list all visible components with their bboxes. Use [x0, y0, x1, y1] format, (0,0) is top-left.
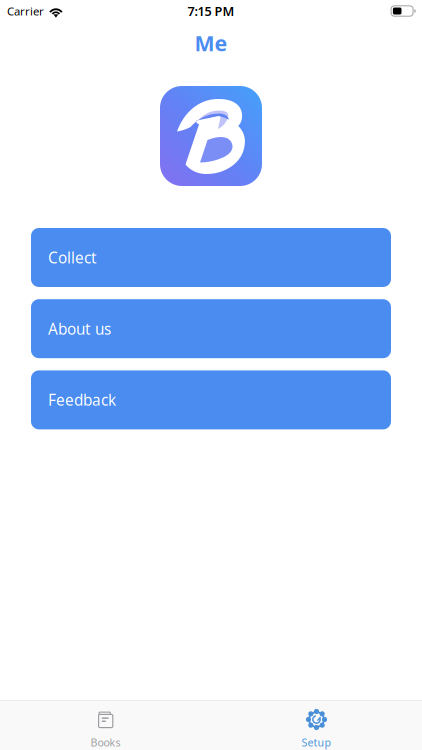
- staticText: About us: [48, 318, 111, 339]
- button[interactable]: Collect: [31, 228, 391, 287]
- staticText: Feedback: [48, 389, 116, 410]
- button[interactable]: Feedback: [31, 370, 391, 429]
- button[interactable]: Setup: [211, 701, 422, 750]
- staticText: 7:15 PM: [187, 2, 234, 20]
- staticText: Books: [90, 735, 120, 749]
- button[interactable]: About us: [31, 299, 391, 358]
- staticText: Setup: [301, 735, 331, 749]
- staticText: Me: [194, 28, 227, 58]
- staticText: Carrier: [7, 3, 44, 19]
- staticText: Collect: [48, 247, 97, 268]
- button[interactable]: Books: [0, 701, 211, 750]
